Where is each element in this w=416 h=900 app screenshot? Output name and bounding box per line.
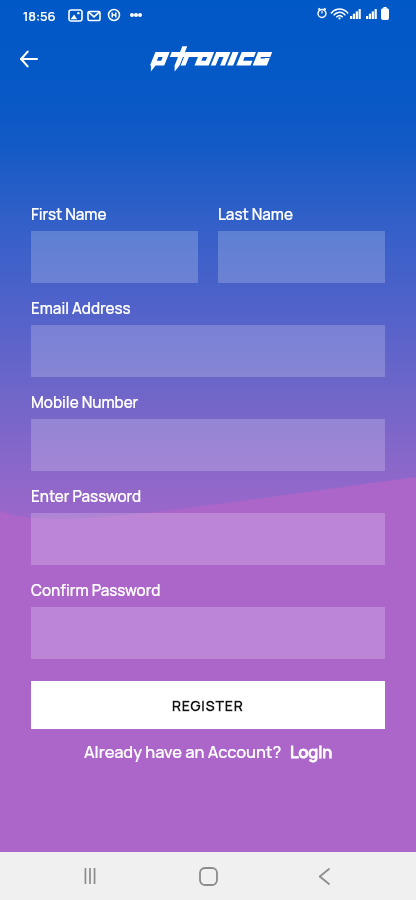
staticText: Email Address [31, 298, 131, 319]
staticText: Last Name [218, 204, 293, 225]
button[interactable]: Back [10, 41, 46, 77]
button[interactable] [218, 231, 385, 283]
button[interactable]: Home [192, 860, 224, 892]
staticText: 18:56 [23, 7, 56, 25]
staticText: Enter Password [31, 486, 142, 507]
staticText: First Name [31, 204, 107, 225]
button[interactable]: REGISTER [31, 681, 385, 729]
staticText: REGISTER [172, 696, 244, 715]
staticText: Confirm Password [31, 580, 161, 601]
button[interactable] [31, 419, 385, 471]
button[interactable]: LogIn [290, 741, 333, 763]
staticText: LogIn [290, 741, 333, 763]
staticText: Mobile Number [31, 392, 139, 413]
staticText: Already have an Account? [84, 741, 282, 763]
button[interactable]: Back [308, 860, 340, 892]
button[interactable]: Recent apps [74, 860, 106, 892]
button[interactable] [31, 325, 385, 377]
button[interactable] [31, 231, 198, 283]
